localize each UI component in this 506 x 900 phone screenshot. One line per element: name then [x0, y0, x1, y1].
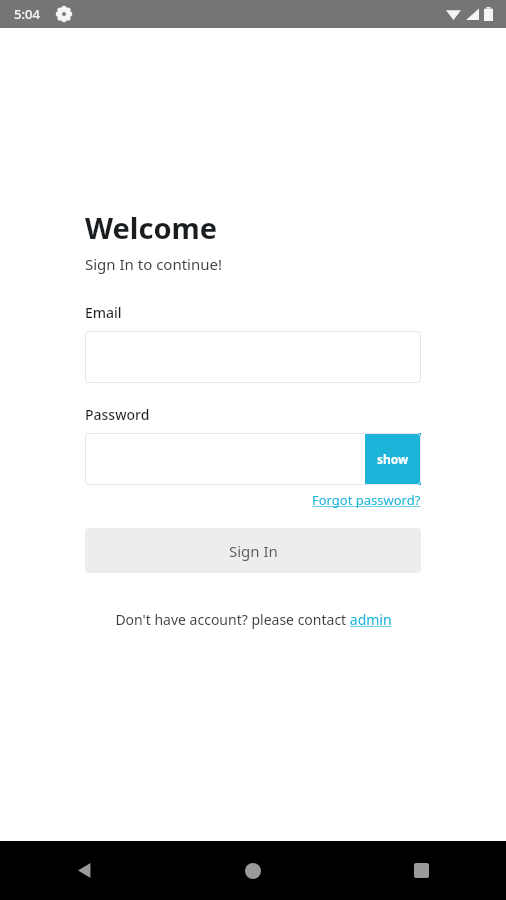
staticText: Password [85, 405, 150, 424]
button[interactable]: show [365, 433, 421, 485]
staticText: Email [85, 303, 122, 322]
button[interactable]: Email field [85, 331, 421, 383]
button[interactable]: Forgot password? [312, 491, 421, 509]
button[interactable]: Password field [85, 433, 365, 485]
button[interactable]: Home [168, 841, 337, 900]
staticText: Sign In [229, 541, 278, 561]
other: Settings [56, 6, 72, 22]
staticText: Sign In to continue! [85, 254, 223, 274]
staticText: show [377, 451, 409, 467]
button[interactable]: Sign In [85, 528, 421, 573]
button[interactable]: Don't have account? please contact admin [115, 610, 392, 629]
staticText: 5:04 [14, 5, 40, 23]
staticText: Welcome [85, 208, 218, 247]
button[interactable]: Back [0, 841, 168, 900]
button[interactable]: Recent apps [337, 841, 506, 900]
